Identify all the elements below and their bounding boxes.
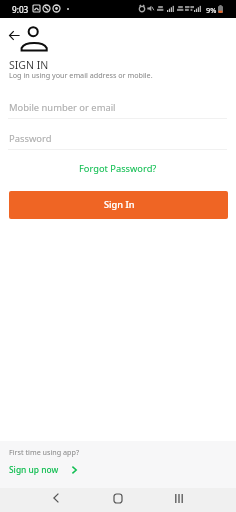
button[interactable]: Sign up now [9, 464, 77, 475]
staticText: SIGN IN [9, 58, 49, 72]
staticText: Password [9, 132, 52, 145]
staticText: 9% [206, 5, 217, 15]
button[interactable]: Sign In [9, 191, 228, 219]
staticText: Mobile number or email [9, 101, 116, 114]
staticText: Sign up now [9, 464, 59, 475]
staticText: First time using app? [9, 447, 80, 457]
staticText: Forgot Password? [79, 162, 157, 175]
staticText: Sign In [104, 198, 135, 211]
staticText: 9:03 [12, 4, 29, 15]
button[interactable]: Forgot Password? [0, 161, 236, 176]
staticText: Log in using your email address or mobil… [9, 70, 153, 80]
button[interactable]: Mobile number or email [0, 100, 236, 120]
button[interactable]: Password [0, 131, 236, 151]
button[interactable]: Home [106, 486, 130, 510]
button[interactable]: Back [44, 486, 68, 510]
button[interactable]: Recent apps [167, 486, 191, 510]
button[interactable]: Back [5, 27, 23, 44]
